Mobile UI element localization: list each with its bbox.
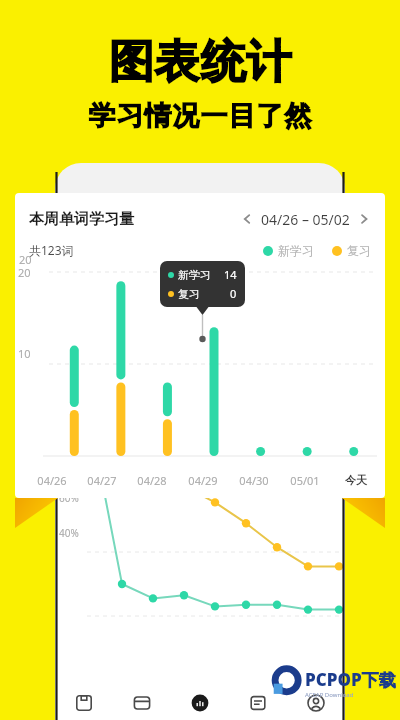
staticText: 记忆率 — [63, 409, 90, 420]
staticText: 复习 — [347, 243, 371, 258]
staticText: 20 — [18, 265, 31, 280]
staticText: 艾宾浩斯遗忘曲线 — [140, 388, 236, 403]
button[interactable]: Articles — [229, 686, 287, 720]
button[interactable]: Statistics — [171, 686, 229, 720]
staticText: 04/26 — [37, 473, 67, 488]
staticText: 新学习 — [178, 268, 211, 282]
button[interactable]: Cards — [113, 686, 171, 720]
staticText: 今天 — [345, 473, 367, 487]
staticText: 05/01 — [290, 473, 320, 488]
staticText: 04/26 – 05/02 — [261, 210, 350, 229]
staticText: 0 — [230, 286, 237, 301]
staticText: 20 — [19, 252, 32, 267]
staticText: 04/29 — [188, 473, 218, 488]
button[interactable]: Notebook — [55, 686, 113, 720]
staticText: 本周单词学习量 — [29, 210, 134, 229]
staticText: 60% — [59, 491, 79, 505]
staticText: 复习 — [178, 287, 200, 301]
staticText: 共123词 — [29, 242, 74, 258]
button[interactable]: Profile — [287, 686, 345, 720]
staticText: 04/28 — [137, 473, 167, 488]
staticText: 图表统计 — [108, 34, 292, 91]
staticText: ACEAP Download — [305, 691, 354, 699]
staticText: 40% — [59, 526, 79, 540]
staticText: 80% — [59, 456, 79, 470]
button[interactable]: Next week — [353, 208, 375, 230]
staticText: 10 — [18, 346, 31, 361]
staticText: 04/27 — [87, 473, 117, 488]
button[interactable]: Previous week — [236, 208, 258, 230]
staticText: 新学习 — [278, 243, 314, 258]
staticText: PCPOP下载 — [305, 668, 396, 691]
staticText: 04/30 — [239, 473, 269, 488]
staticText: 100% — [59, 421, 85, 435]
staticText: 遗忘曲线 — [69, 354, 125, 372]
staticText: 14 — [224, 267, 237, 282]
staticText: 学习情况一目了然 — [88, 99, 312, 133]
